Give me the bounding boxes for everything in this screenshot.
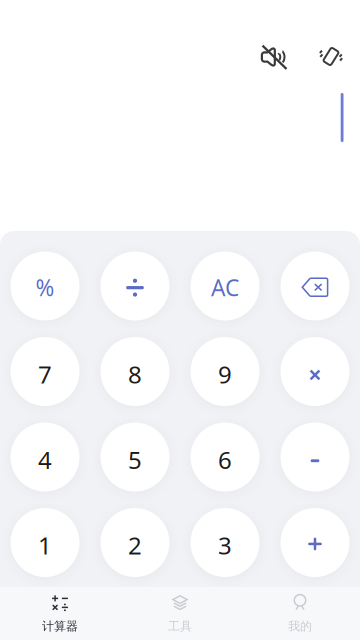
- button[interactable]: [270, 414, 360, 500]
- staticText: 工具: [168, 619, 192, 634]
- staticText: 我的: [288, 619, 312, 634]
- button[interactable]: [90, 243, 180, 329]
- button[interactable]: 8: [90, 329, 180, 414]
- button[interactable]: 1: [0, 500, 90, 585]
- staticText: 4: [38, 444, 52, 476]
- staticText: 计算器: [42, 619, 78, 634]
- staticText: 9: [218, 358, 232, 390]
- staticText: 1: [38, 529, 52, 561]
- button[interactable]: 计算器: [0, 587, 120, 640]
- staticText: AC: [211, 272, 239, 302]
- staticText: %: [35, 272, 54, 302]
- button[interactable]: %: [0, 243, 90, 329]
- staticText: 5: [128, 444, 142, 476]
- staticText: 7: [38, 358, 52, 390]
- button[interactable]: Sound off: [260, 44, 291, 70]
- button[interactable]: 我的: [240, 587, 360, 640]
- button[interactable]: [270, 243, 360, 329]
- button[interactable]: 4: [0, 414, 90, 500]
- staticText: 8: [128, 358, 142, 390]
- button[interactable]: [270, 500, 360, 585]
- button[interactable]: Vibrate: [319, 44, 343, 70]
- button[interactable]: 5: [90, 414, 180, 500]
- staticText: 2: [128, 529, 142, 561]
- button[interactable]: [270, 329, 360, 414]
- button[interactable]: 7: [0, 329, 90, 414]
- button[interactable]: 9: [180, 329, 270, 414]
- button[interactable]: 6: [180, 414, 270, 500]
- button[interactable]: AC: [180, 243, 270, 329]
- button[interactable]: 2: [90, 500, 180, 585]
- button[interactable]: 3: [180, 500, 270, 585]
- button[interactable]: 工具: [120, 587, 240, 640]
- staticText: 6: [218, 444, 232, 476]
- staticText: 3: [218, 529, 232, 561]
